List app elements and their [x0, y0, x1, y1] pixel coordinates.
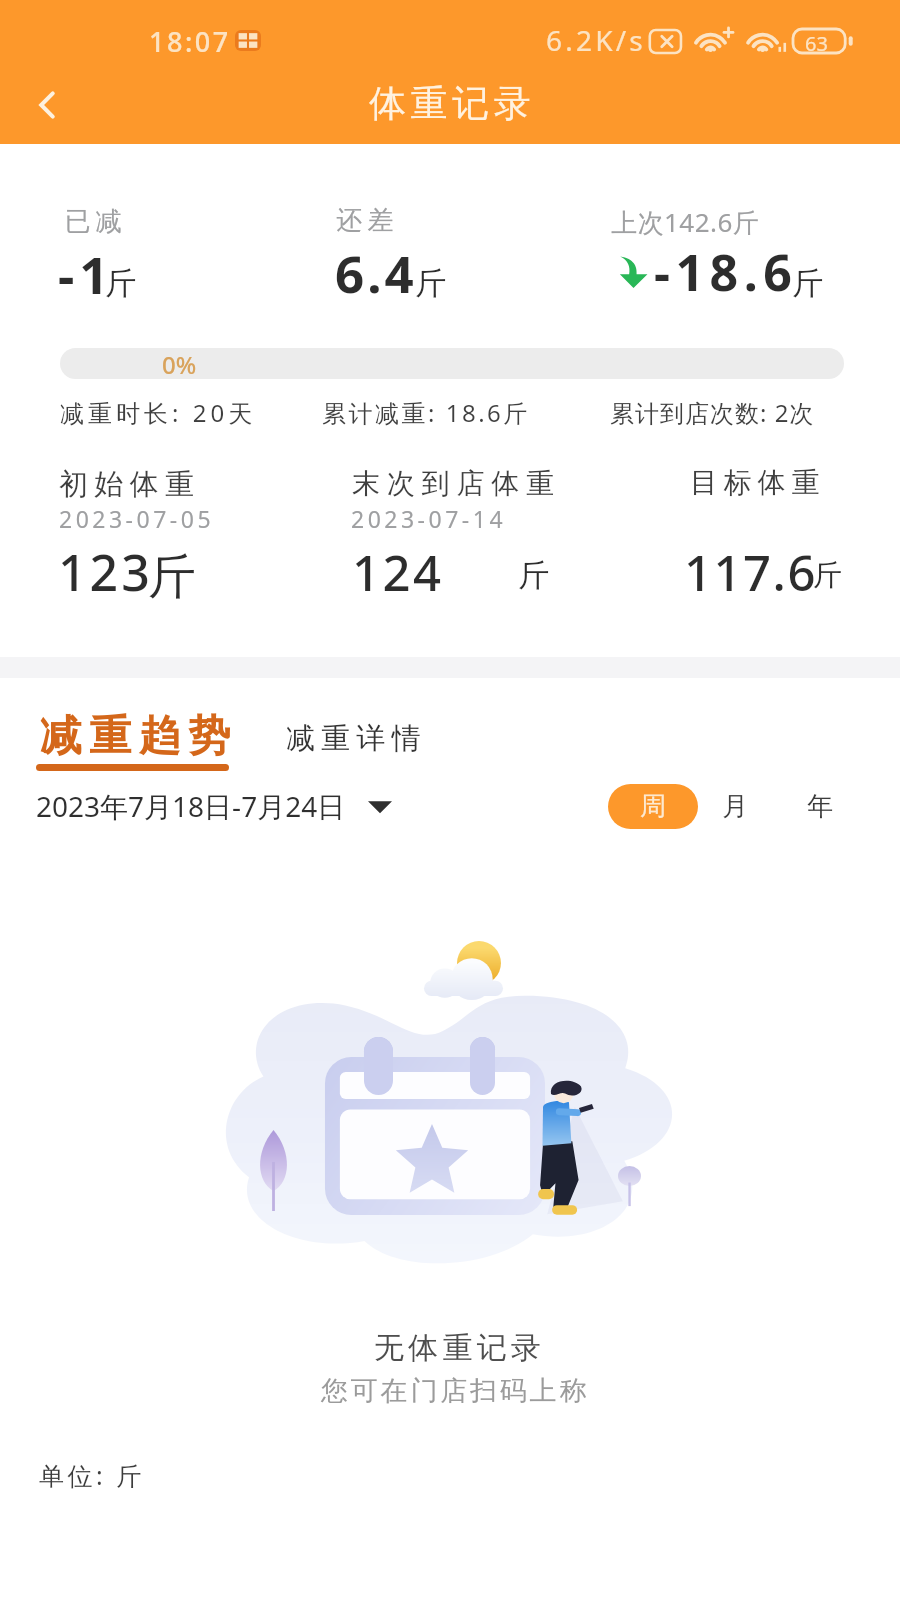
staticText: -18.6 — [654, 238, 798, 306]
staticText: 减重时长: 20天 — [60, 396, 257, 429]
staticText: 117.6 — [684, 539, 817, 606]
staticText: 18:07 — [149, 23, 231, 60]
button[interactable]: 2023年7月18日-7月24日 — [36, 787, 392, 825]
staticText: 斤 — [148, 547, 196, 607]
staticText: 斤 — [792, 264, 823, 303]
staticText: 上次142.6斤 — [611, 204, 760, 240]
staticText: 124 — [352, 539, 444, 606]
staticText: 斤 — [105, 264, 136, 303]
staticText: 0% — [162, 348, 197, 381]
staticText: 月 — [722, 790, 748, 823]
staticText: -1 — [58, 239, 114, 308]
staticText: 累计到店次数: 2次 — [610, 396, 815, 429]
staticText: 周 — [640, 790, 666, 823]
staticText: 还差 — [334, 204, 396, 237]
staticText: 63 — [805, 30, 828, 57]
staticText: 末次到店体重 — [352, 466, 561, 501]
staticText: 2023-07-14 — [351, 503, 507, 534]
button[interactable]: 减重趋势 — [26, 702, 239, 774]
button[interactable]: 月 — [710, 784, 760, 829]
staticText: 初始体重 — [59, 466, 201, 503]
button[interactable]: 周 — [608, 784, 698, 829]
staticText: 6.4 — [335, 238, 417, 307]
staticText: 2023年7月18日-7月24日 — [36, 787, 346, 825]
staticText: 123 — [58, 538, 153, 606]
staticText: 减重趋势 — [36, 710, 234, 763]
staticText: 斤 — [415, 264, 446, 303]
staticText: 已减 — [62, 205, 124, 238]
staticText: 无体重记录 — [372, 1329, 543, 1367]
staticText: 您可在门店扫码上称 — [321, 1374, 590, 1408]
staticText: 年 — [807, 790, 833, 823]
button[interactable]: 年 — [795, 784, 845, 829]
staticText: 体重记录 — [369, 80, 536, 127]
button[interactable]: 减重详情 — [272, 708, 434, 768]
button[interactable]: Back — [0, 66, 96, 144]
staticText: 6.2K/s — [546, 21, 646, 59]
staticText: 斤 — [813, 557, 842, 594]
staticText: 2023-07-05 — [59, 503, 215, 534]
staticText: 斤 — [518, 556, 549, 595]
staticText: 累计减重: 18.6斤 — [322, 396, 530, 429]
staticText: 减重详情 — [286, 720, 427, 757]
staticText: 目标体重 — [690, 465, 826, 500]
staticText: 单位: 斤 — [39, 1458, 145, 1492]
